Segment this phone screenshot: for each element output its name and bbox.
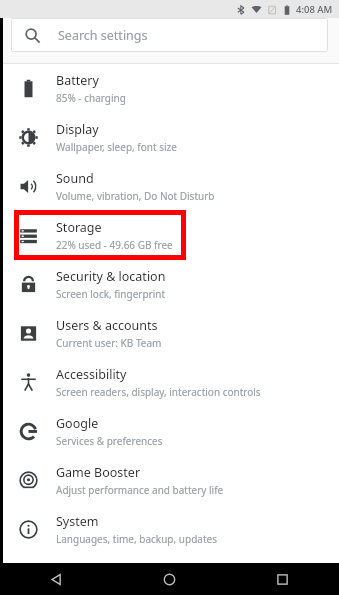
staticText: Wallpaper, sleep, font size (56, 140, 177, 154)
button[interactable]: System (0, 505, 339, 554)
button[interactable]: Game Booster (0, 456, 339, 505)
staticText: Screen lock, fingerprint (56, 287, 166, 301)
staticText: Sound (56, 170, 94, 187)
staticText: Current user: KB Team (56, 336, 162, 350)
staticText: Accessibility (56, 366, 127, 383)
button[interactable]: Display (0, 113, 339, 162)
staticText: Screen readers, display, interaction con… (56, 385, 261, 399)
button[interactable]: Home (113, 563, 226, 595)
staticText: Search settings (58, 27, 148, 44)
staticText: Game Booster (56, 464, 141, 481)
button[interactable]: Sound (0, 162, 339, 211)
button[interactable]: Search settings (11, 18, 328, 52)
staticText: Google (56, 415, 99, 432)
button[interactable]: Battery (0, 64, 339, 113)
button[interactable]: Accessibility (0, 358, 339, 407)
staticText: Storage (56, 219, 102, 236)
staticText: System (56, 513, 99, 530)
button[interactable]: Back (0, 563, 113, 595)
staticText: Languages, time, backup, updates (56, 532, 217, 546)
staticText: Volume, vibration, Do Not Disturb (56, 189, 215, 203)
button[interactable]: Storage (0, 211, 339, 260)
button[interactable]: Recent apps (226, 563, 339, 595)
staticText: 4:08 AM (296, 3, 333, 16)
staticText: Users & accounts (56, 317, 158, 334)
staticText: Services & preferences (56, 434, 163, 448)
button[interactable]: Security & location (0, 260, 339, 309)
staticText: 22% used - 49.66 GB free (56, 238, 173, 252)
staticText: Security & location (56, 268, 166, 285)
button[interactable]: Users & accounts (0, 309, 339, 358)
button[interactable]: Google (0, 407, 339, 456)
staticText: Battery (56, 72, 99, 89)
staticText: Adjust performance and battery life (56, 483, 224, 497)
staticText: 85% - charging (56, 91, 126, 105)
staticText: Display (56, 121, 99, 138)
